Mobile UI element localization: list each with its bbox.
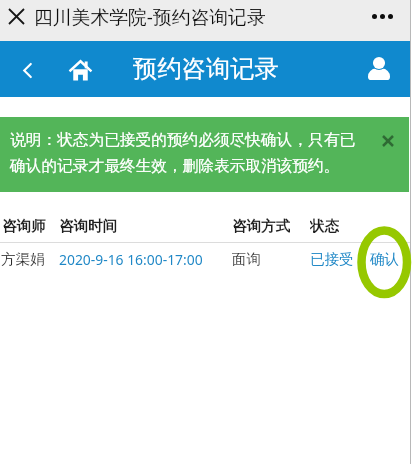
staticText: 确认 bbox=[370, 250, 399, 267]
staticText: 咨询时间 bbox=[59, 217, 117, 233]
staticText: 预约咨询记录 bbox=[133, 54, 279, 85]
staticText: 说明：状态为已接受的预约必须尽快确认，只有已 确认的记录才最终生效，删除表示取消… bbox=[10, 130, 356, 176]
button[interactable]: More options bbox=[370, 8, 395, 25]
staticText: 四川美术学院-预约咨询记录 bbox=[34, 4, 266, 30]
staticText: 咨询师 bbox=[2, 217, 46, 233]
button[interactable]: 方渠娟 bbox=[0, 250, 412, 267]
staticText: 已接受 bbox=[310, 250, 354, 267]
staticText: 面询 bbox=[232, 250, 261, 267]
staticText: 2020-9-16 16:00-17:00 bbox=[59, 250, 203, 267]
button[interactable]: Home bbox=[63, 53, 97, 87]
button[interactable]: Dismiss notice bbox=[376, 129, 400, 153]
staticText: 咨询方式 bbox=[232, 217, 290, 233]
button[interactable]: Back bbox=[11, 54, 43, 86]
button[interactable]: Profile bbox=[362, 52, 396, 86]
button[interactable]: Close bbox=[3, 3, 30, 30]
staticText: 状态 bbox=[310, 217, 339, 233]
staticText: 方渠娟 bbox=[1, 250, 45, 267]
